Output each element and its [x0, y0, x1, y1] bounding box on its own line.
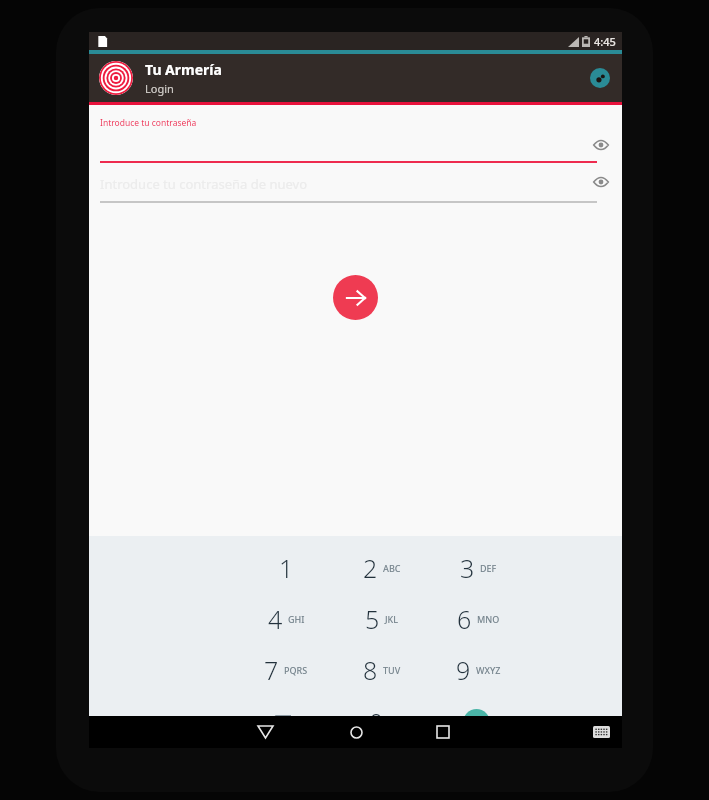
- button[interactable]: 0: [334, 696, 430, 748]
- button[interactable]: Toggle password visibility: [588, 132, 614, 158]
- button[interactable]: [99, 61, 133, 95]
- staticText: 1: [279, 551, 294, 585]
- button[interactable]: 3: [430, 542, 526, 593]
- staticText: 0: [369, 705, 384, 739]
- staticText: MNO: [477, 613, 500, 625]
- staticText: 4: [268, 602, 283, 636]
- staticText: DEF: [480, 562, 497, 574]
- button[interactable]: 9: [430, 644, 526, 696]
- staticText: Login: [145, 81, 174, 96]
- button[interactable]: Switch keyboard: [587, 718, 615, 746]
- button[interactable]: Back: [249, 716, 281, 748]
- button[interactable]: 2: [334, 542, 430, 593]
- staticText: 9: [456, 653, 471, 687]
- staticText: +: [389, 715, 395, 729]
- button[interactable]: Settings: [590, 68, 610, 88]
- button[interactable]: Continue: [333, 275, 378, 320]
- staticText: 8: [363, 653, 378, 687]
- button[interactable]: 7: [238, 644, 334, 696]
- staticText: 4:45: [594, 34, 616, 49]
- staticText: 7: [264, 653, 279, 687]
- staticText: TUV: [383, 664, 401, 676]
- button[interactable]: Home: [340, 716, 372, 748]
- staticText: 5: [365, 602, 380, 636]
- button[interactable]: 6: [430, 593, 526, 644]
- button[interactable]: Toggle password visibility: [588, 169, 614, 195]
- staticText: Introduce tu contraseña de nuevo: [100, 175, 308, 193]
- staticText: PQRS: [284, 664, 308, 676]
- staticText: GHI: [288, 613, 305, 625]
- staticText: 2: [363, 551, 378, 585]
- button[interactable]: 1: [238, 542, 334, 593]
- button[interactable]: 4: [238, 593, 334, 644]
- staticText: 3: [460, 551, 475, 585]
- button[interactable]: 5: [334, 593, 430, 644]
- button[interactable]: 8: [334, 644, 430, 696]
- staticText: JKL: [385, 613, 399, 625]
- staticText: WXYZ: [476, 664, 501, 676]
- button[interactable]: Enter: [463, 709, 490, 736]
- button[interactable]: Recents: [427, 716, 459, 748]
- staticText: Tu Armería: [145, 60, 222, 79]
- button[interactable]: Backspace: [238, 696, 334, 748]
- staticText: ABC: [383, 562, 401, 574]
- staticText: Introduce tu contraseña: [100, 117, 197, 129]
- staticText: 6: [457, 602, 472, 636]
